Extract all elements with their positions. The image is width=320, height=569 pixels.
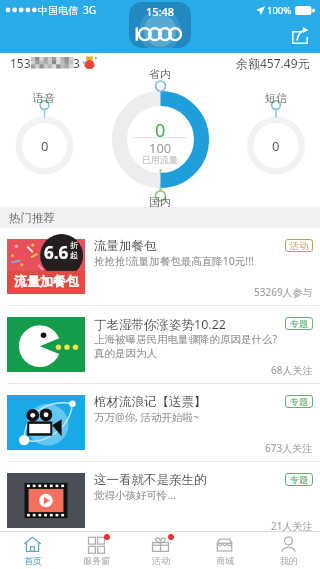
staticText: 商城 xyxy=(216,555,234,566)
button[interactable]: 商城 xyxy=(192,532,256,569)
button[interactable]: 活动 xyxy=(128,532,192,569)
staticText: 流量加餐包 xyxy=(94,238,157,254)
staticText: 这一看就不是亲生的 xyxy=(94,472,207,488)
staticText: 53269人参与 xyxy=(254,285,313,299)
staticText: 0 xyxy=(272,137,280,155)
staticText: 153 xyxy=(10,55,31,71)
staticText: 100% xyxy=(267,4,292,17)
staticText: 我的 xyxy=(280,555,298,566)
staticText: 活动 xyxy=(152,555,170,566)
staticText: 6.6 xyxy=(44,241,69,264)
staticText: 余额457.49元 xyxy=(236,55,310,71)
staticText: 语音 xyxy=(33,91,55,105)
staticText: 100 xyxy=(149,139,172,157)
staticText: 短信 xyxy=(265,91,287,105)
staticText: 21人关注 xyxy=(271,519,313,533)
staticText: 首页 xyxy=(24,555,42,566)
staticText: 上海被曝居民用电量骤降的原因是什么? 真的是因为人 xyxy=(94,332,278,360)
staticText: 68人关注 xyxy=(271,363,313,377)
button[interactable]: 服务窗 xyxy=(64,532,128,569)
staticText: 棺材流浪记【送票】 xyxy=(94,394,207,410)
staticText: 热门推荐 xyxy=(9,211,55,225)
staticText: 流量加餐包 xyxy=(14,273,79,289)
staticText: 折 xyxy=(70,240,78,250)
button[interactable]: 首页 xyxy=(0,532,64,569)
button[interactable]: 我的 xyxy=(256,532,320,569)
staticText: 0 xyxy=(41,137,49,155)
button[interactable]: 这一看就不是亲生的 xyxy=(0,462,320,539)
staticText: 3G xyxy=(83,3,96,17)
staticText: 专题 xyxy=(290,318,308,329)
staticText: 万万@你, 活动开始啦~ xyxy=(94,410,199,424)
staticText: 起 xyxy=(70,250,78,260)
staticText: 专题 xyxy=(290,474,308,485)
staticText: 已用流量 xyxy=(142,154,178,165)
button[interactable]: 棺材流浪记【送票】 xyxy=(0,384,320,461)
staticText: 0 xyxy=(155,118,166,143)
staticText: 673人关注 xyxy=(265,441,313,455)
staticText: 丁老湿带你涨姿势10.22 xyxy=(94,316,226,333)
button[interactable]: 丁老湿带你涨姿势10.22 xyxy=(0,306,320,383)
staticText: 15:48 xyxy=(146,4,175,19)
staticText: 中国电信 xyxy=(38,4,78,17)
staticText: 抢抢抢!流量加餐包最高直降10元!!! xyxy=(94,254,254,268)
button[interactable]: Share xyxy=(286,22,314,50)
staticText: 服务窗 xyxy=(83,555,110,566)
staticText: 3 xyxy=(73,55,80,71)
staticText: 觉得小孩好可怜... xyxy=(94,488,176,502)
staticText: 活动 xyxy=(290,240,308,251)
staticText: 省内 xyxy=(149,67,171,81)
staticText: 国内 xyxy=(149,195,171,209)
button[interactable]: 6.6 xyxy=(0,228,320,305)
staticText: 专题 xyxy=(290,396,308,407)
